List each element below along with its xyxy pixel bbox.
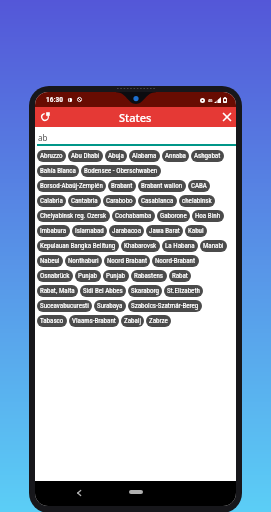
staticText: Zabrze — [149, 317, 168, 325]
staticText: Zabalj — [124, 317, 141, 325]
staticText: Hoa Binh — [195, 212, 221, 220]
staticText: Abu Dhabi — [71, 152, 100, 160]
staticText: CABA — [191, 182, 207, 190]
button[interactable]: Osnabrück — [37, 270, 73, 282]
button[interactable]: Borsod-Abaúj-Zemplén — [37, 180, 106, 192]
button[interactable]: Alabama — [129, 150, 160, 162]
button[interactable]: Home — [129, 490, 143, 494]
staticText: Jarabacoa — [112, 227, 141, 235]
staticText: Punjab — [78, 272, 98, 280]
button[interactable]: Close — [219, 109, 235, 125]
staticText: Skaraborg — [131, 287, 159, 295]
staticText: Rabastens — [134, 272, 164, 280]
button[interactable]: Calabria — [37, 195, 66, 207]
staticText: Nonthaburi — [68, 257, 99, 265]
button[interactable]: Kabul — [185, 225, 207, 237]
staticText: Surabaya — [97, 302, 123, 310]
staticText: Sidi Bel Abbes — [83, 287, 123, 295]
button[interactable]: Bahía Blanca — [37, 165, 79, 177]
staticText: Osnabrück — [40, 272, 70, 280]
button[interactable]: Nabeul — [37, 255, 63, 267]
button[interactable]: Cochabamba — [112, 210, 155, 222]
button[interactable]: Zabrze — [146, 315, 171, 327]
staticText: Chelyabinsk reg. Ozersk — [40, 212, 107, 220]
staticText: Cochabamba — [115, 212, 152, 220]
button[interactable]: Brabant wallon — [138, 180, 186, 192]
staticText: Abruzzo — [40, 152, 63, 160]
button[interactable]: Refresh — [37, 109, 53, 125]
button[interactable]: Annaba — [162, 150, 189, 162]
button[interactable]: Szabolcs-Szatmár-Bereg — [128, 300, 202, 312]
button[interactable]: Bodensee - Oberschwaben — [81, 165, 161, 177]
button[interactable]: Noord Brabant — [104, 255, 150, 267]
button[interactable]: Back — [73, 487, 84, 498]
button[interactable]: Cantabria — [68, 195, 101, 207]
button[interactable]: La Habana — [162, 240, 198, 252]
staticText: Abuja — [108, 152, 124, 160]
button[interactable]: Hoa Binh — [192, 210, 224, 222]
button[interactable]: Rabat — [169, 270, 191, 282]
button[interactable]: Ashgabat — [191, 150, 224, 162]
staticText: chelabinsk — [182, 197, 212, 205]
button[interactable]: Rabat, Malta — [37, 285, 78, 297]
button[interactable]: Kepulauan Bangka Belitung — [37, 240, 119, 252]
staticText: Gaborone — [160, 212, 187, 220]
button[interactable]: Punjab — [103, 270, 129, 282]
button[interactable]: Zabalj — [121, 315, 144, 327]
button[interactable]: Noord-Brabant — [152, 255, 199, 267]
staticText: ab — [38, 132, 48, 143]
staticText: Imbabura — [40, 227, 67, 235]
button[interactable]: Surabaya — [94, 300, 126, 312]
staticText: Bodensee - Oberschwaben — [84, 167, 158, 175]
staticText: St.Elizabeth — [167, 287, 200, 295]
button[interactable]: Chelyabinsk reg. Ozersk — [37, 210, 110, 222]
button[interactable]: Suceavabucuresti — [37, 300, 92, 312]
staticText: Rabat, Malta — [40, 287, 75, 295]
button[interactable]: Imbabura — [37, 225, 70, 237]
button[interactable]: Vlaams-Brabant — [69, 315, 119, 327]
staticText: 4G — [208, 98, 213, 103]
staticText: Kabul — [188, 227, 204, 235]
staticText: La Habana — [165, 242, 195, 250]
staticText: Annaba — [165, 152, 186, 160]
staticText: 16:30 — [46, 95, 63, 104]
button[interactable]: Jarabacoa — [109, 225, 144, 237]
staticText: Ashgabat — [194, 152, 221, 160]
button[interactable]: Carabobo — [103, 195, 136, 207]
button[interactable]: Brabant — [108, 180, 136, 192]
staticText: Suceavabucuresti — [40, 302, 89, 310]
button[interactable]: Abu Dhabi — [68, 150, 103, 162]
staticText: Rabat — [172, 272, 188, 280]
staticText: Brabant — [111, 182, 133, 190]
staticText: Szabolcs-Szatmár-Bereg — [131, 302, 199, 310]
button[interactable]: Khabarovsk — [121, 240, 160, 252]
staticText: Khabarovsk — [124, 242, 157, 250]
button[interactable]: Nonthaburi — [65, 255, 102, 267]
button[interactable]: Islamabad — [72, 225, 107, 237]
staticText: Cantabria — [71, 197, 98, 205]
button[interactable]: Skaraborg — [128, 285, 162, 297]
button[interactable]: Abruzzo — [37, 150, 66, 162]
button[interactable]: Sidi Bel Abbes — [80, 285, 126, 297]
button[interactable]: Manabi — [200, 240, 227, 252]
staticText: Carabobo — [106, 197, 133, 205]
staticText: Noord-Brabant — [155, 257, 196, 265]
staticText: States — [119, 110, 152, 125]
button[interactable]: Abuja — [105, 150, 127, 162]
button[interactable]: Casablanca — [138, 195, 177, 207]
button[interactable]: Tabasco — [37, 315, 67, 327]
button[interactable]: CABA — [188, 180, 210, 192]
staticText: Punjab — [106, 272, 126, 280]
staticText: Nabeul — [40, 257, 60, 265]
button[interactable]: Punjab — [75, 270, 101, 282]
staticText: Kepulauan Bangka Belitung — [40, 242, 116, 250]
button[interactable]: Rabastens — [131, 270, 167, 282]
button[interactable]: chelabinsk — [179, 195, 215, 207]
staticText: Vlaams-Brabant — [72, 317, 116, 325]
staticText: Jawa Barat — [149, 227, 180, 235]
staticText: Casablanca — [141, 197, 174, 205]
button[interactable]: Jawa Barat — [146, 225, 183, 237]
button[interactable]: St.Elizabeth — [164, 285, 203, 297]
staticText: Alabama — [132, 152, 157, 160]
button[interactable]: Gaborone — [157, 210, 190, 222]
